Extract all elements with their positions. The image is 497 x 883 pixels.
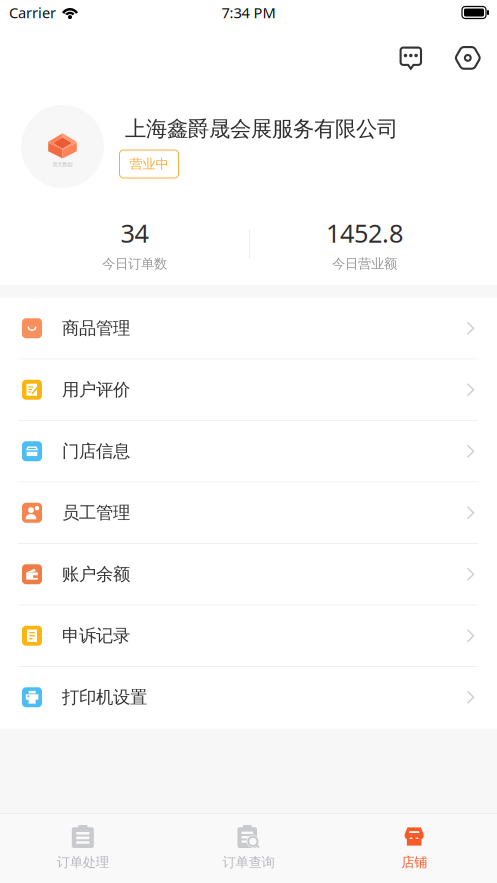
staticText: 员工管理 — [62, 502, 130, 523]
staticText: 今日订单数 — [102, 256, 167, 272]
button[interactable]: 商品管理 — [0, 298, 497, 359]
staticText: 34 — [120, 216, 148, 250]
staticText: 门店信息 — [62, 441, 130, 462]
staticText: 申诉记录 — [62, 625, 130, 646]
button[interactable]: 申诉记录 — [0, 605, 497, 667]
button[interactable]: 账户余额 — [0, 544, 497, 605]
staticText: 上海鑫爵晟会展服务有限公司 — [125, 116, 398, 142]
staticText: 暂无数据 — [52, 161, 72, 168]
button[interactable]: 用户评价 — [0, 359, 497, 421]
staticText: 打印机设置 — [62, 687, 147, 708]
staticText: 1452.8 — [326, 216, 403, 250]
button[interactable]: Messages — [389, 36, 446, 80]
staticText: 店铺 — [401, 854, 427, 870]
button[interactable]: Settings — [446, 36, 490, 80]
button[interactable]: 订单查询 — [166, 814, 331, 883]
staticText: 订单处理 — [57, 854, 109, 870]
button[interactable]: 员工管理 — [0, 482, 497, 544]
staticText: 7:34 PM — [221, 3, 275, 22]
staticText: 营业中 — [129, 156, 168, 172]
staticText: 账户余额 — [62, 564, 130, 585]
staticText: 今日营业额 — [332, 256, 397, 272]
staticText: 用户评价 — [62, 379, 130, 400]
staticText: 商品管理 — [62, 318, 130, 339]
button[interactable]: 打印机设置 — [0, 667, 497, 728]
button[interactable]: 店铺 — [331, 814, 497, 883]
staticText: 订单查询 — [222, 854, 274, 870]
button[interactable]: 门店信息 — [0, 421, 497, 482]
button[interactable]: 订单处理 — [0, 814, 166, 883]
staticText: Carrier — [9, 3, 56, 22]
